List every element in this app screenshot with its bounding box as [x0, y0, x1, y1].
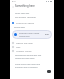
staticText: Something here	[15, 4, 35, 8]
staticText: Choose an option	[16, 22, 35, 25]
staticText: Group label	[14, 26, 25, 29]
staticText: Some more text here and another line of …	[15, 63, 40, 69]
staticText: Another choice	[16, 50, 32, 53]
staticText: Secondary heading	[15, 16, 36, 19]
staticText: Small label text	[15, 12, 30, 15]
button[interactable]: Another choice	[10, 49, 54, 53]
button[interactable]: Back	[10, 4, 15, 9]
staticText: 9:41	[12, 0, 16, 3]
button[interactable]: Two	[10, 45, 54, 49]
button[interactable]: Choose an option	[10, 21, 54, 25]
button[interactable]: Action	[47, 70, 51, 73]
staticText: Edit	[45, 33, 50, 36]
staticText: Description paragraph line continues ove…	[15, 54, 42, 60]
staticText: Two	[16, 46, 21, 49]
staticText: Option one item	[16, 42, 33, 45]
button[interactable]: Selected item name	[12, 30, 52, 39]
staticText: supporting	[19, 35, 30, 38]
staticText: Selected item name	[19, 32, 40, 35]
button[interactable]: Option one item	[10, 41, 54, 45]
